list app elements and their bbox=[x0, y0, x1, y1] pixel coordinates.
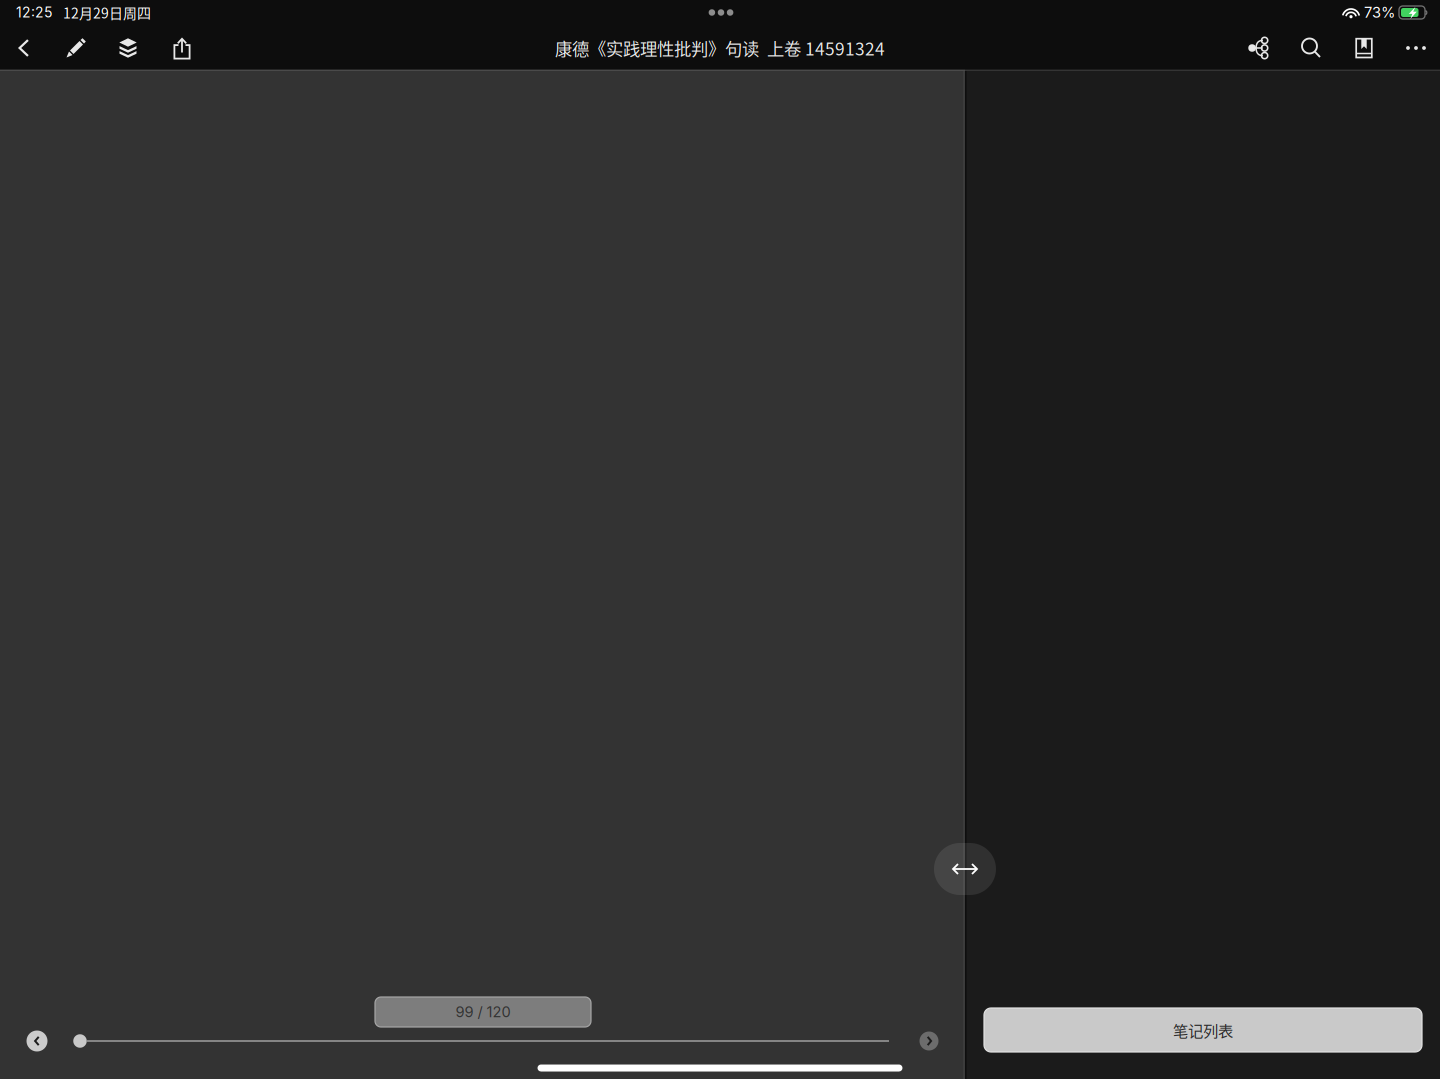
button[interactable]: 99 / 120 bbox=[375, 997, 591, 1027]
button[interactable]: Search bbox=[1289, 26, 1333, 70]
staticText: 笔记列表 bbox=[1173, 1019, 1233, 1041]
button[interactable]: Previous page bbox=[20, 1024, 54, 1058]
button[interactable]: Annotate bbox=[54, 26, 98, 70]
button[interactable]: More bbox=[1394, 26, 1438, 70]
button[interactable]: Resize split view bbox=[934, 843, 996, 895]
staticText: 99 / 120 bbox=[455, 1003, 510, 1021]
staticText: 12月29日周四 bbox=[63, 2, 151, 23]
button[interactable]: Outline bbox=[1237, 26, 1281, 70]
button[interactable]: 笔记列表 bbox=[984, 1008, 1422, 1052]
staticText: 12:25 bbox=[16, 4, 53, 21]
staticText: 康德《实践理性批判》句读 上卷 14591324 bbox=[555, 35, 885, 61]
button[interactable]: Back bbox=[2, 26, 46, 70]
button[interactable]: Share bbox=[160, 26, 204, 70]
button[interactable]: Page slider bbox=[66, 1027, 94, 1055]
staticText: 73% bbox=[1364, 4, 1395, 21]
button[interactable]: Bookmarks bbox=[1342, 26, 1386, 70]
button[interactable]: Next page bbox=[912, 1024, 946, 1058]
button[interactable]: Layers bbox=[106, 26, 150, 70]
